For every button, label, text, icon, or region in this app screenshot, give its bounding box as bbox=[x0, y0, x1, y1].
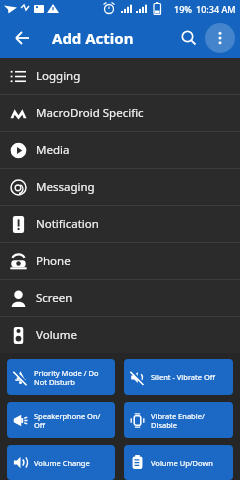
staticText: Phone bbox=[36, 253, 71, 269]
staticText: Screen bbox=[36, 290, 73, 306]
staticText: Logging bbox=[36, 68, 81, 84]
button[interactable]: Search bbox=[176, 25, 202, 51]
button[interactable]: Screen bbox=[0, 280, 240, 316]
button[interactable]: Volume Up/Down bbox=[124, 445, 233, 480]
button[interactable]: More options bbox=[205, 23, 235, 53]
button[interactable]: Media bbox=[0, 132, 240, 168]
staticText: Silent - Vibrate Off bbox=[151, 372, 215, 382]
button[interactable]: Silent - Vibrate Off bbox=[124, 359, 233, 395]
button[interactable]: Priority Mode / Do Not Disturb bbox=[7, 359, 115, 395]
staticText: 19% bbox=[174, 3, 192, 15]
button[interactable]: Volume bbox=[0, 317, 240, 353]
button[interactable]: Logging bbox=[0, 58, 240, 94]
button[interactable]: Back bbox=[8, 24, 36, 52]
staticText: MacroDroid Specific bbox=[36, 105, 144, 121]
button[interactable]: Notification bbox=[0, 206, 240, 242]
staticText: Volume bbox=[36, 327, 77, 343]
button[interactable]: Volume Change bbox=[7, 445, 115, 480]
button[interactable]: Speakerphone On/Off bbox=[7, 402, 115, 438]
staticText: Volume Change bbox=[34, 458, 90, 468]
button[interactable]: Phone bbox=[0, 243, 240, 279]
staticText: Messaging bbox=[36, 179, 95, 195]
staticText: Media bbox=[36, 142, 70, 158]
staticText: Vibrate Enable/ Disable bbox=[151, 411, 205, 430]
staticText: Speakerphone On/Off bbox=[34, 411, 111, 430]
staticText: Add Action bbox=[52, 28, 134, 48]
button[interactable]: Messaging bbox=[0, 169, 240, 205]
staticText: Volume Up/Down bbox=[151, 458, 213, 468]
button[interactable]: Vibrate Enable/ Disable bbox=[124, 402, 233, 438]
staticText: Priority Mode / Do Not Disturb bbox=[34, 368, 99, 387]
staticText: 10:34 AM bbox=[196, 3, 236, 15]
button[interactable]: MacroDroid Specific bbox=[0, 95, 240, 131]
staticText: Notification bbox=[36, 216, 99, 232]
